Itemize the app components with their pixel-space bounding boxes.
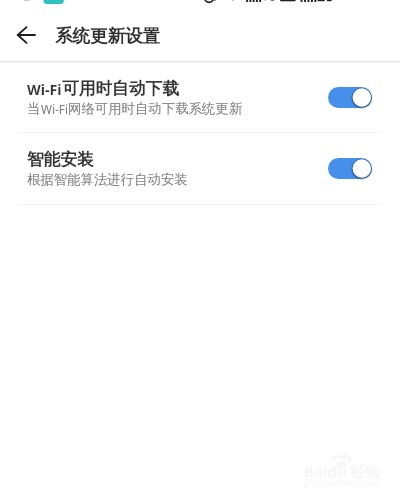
- button[interactable]: Toggle: [328, 87, 372, 108]
- button[interactable]: 智能安装: [0, 133, 400, 204]
- staticText: 当: [27, 100, 41, 117]
- staticText: 智能安装: [27, 149, 94, 170]
- button[interactable]: Back: [6, 18, 46, 58]
- staticText: Baidu 经验: [304, 461, 381, 481]
- staticText: 网络可用时自动下载系统更新: [68, 100, 243, 117]
- button[interactable]: Toggle: [328, 158, 372, 179]
- staticText: 可用时自动下载: [62, 78, 179, 99]
- staticText: Wi-Fi: [41, 101, 68, 117]
- staticText: 系统更新设置: [55, 25, 160, 47]
- staticText: 根据智能算法进行自动安装: [27, 171, 188, 188]
- button[interactable]: Wi-Fi: [0, 63, 400, 132]
- staticText: Wi-Fi: [27, 80, 62, 99]
